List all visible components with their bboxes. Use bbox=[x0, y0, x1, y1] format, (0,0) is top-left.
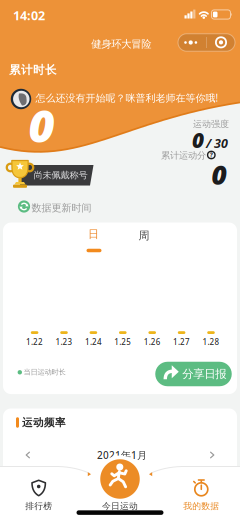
staticText: 累计时长 bbox=[9, 63, 57, 77]
button[interactable]: 排行榜 bbox=[7, 468, 71, 520]
staticText: 分享日报 bbox=[182, 367, 226, 381]
staticText: 1.24 bbox=[85, 336, 102, 347]
staticText: 今日运动 bbox=[102, 500, 138, 512]
staticText: 运动频率 bbox=[22, 416, 66, 429]
staticText: / 30 bbox=[206, 135, 228, 152]
button[interactable]: 今日运动 bbox=[85, 460, 155, 520]
staticText: 数据更新时间 bbox=[32, 201, 92, 214]
button[interactable]: 周 bbox=[0, 0, 240, 520]
staticText: 2021年1月 bbox=[97, 448, 147, 462]
staticText: 1.28 bbox=[202, 336, 219, 347]
staticText: 累计运动分 bbox=[161, 150, 206, 161]
staticText: 14:02 bbox=[13, 7, 45, 24]
button[interactable]: 我的数据 bbox=[169, 468, 233, 520]
staticText: 1.26 bbox=[144, 336, 161, 347]
staticText: 健身环大冒险 bbox=[91, 37, 151, 50]
staticText: 0 bbox=[192, 126, 204, 154]
staticText: 1.23 bbox=[55, 336, 72, 347]
button[interactable]: 更多 bbox=[0, 0, 240, 520]
staticText: 排行榜 bbox=[25, 500, 52, 512]
staticText: 日 bbox=[88, 227, 99, 241]
button[interactable]: 关闭 bbox=[0, 0, 240, 520]
staticText: 运动强度 bbox=[193, 118, 229, 130]
button[interactable]: 说明 bbox=[0, 0, 240, 520]
staticText: 1.22 bbox=[26, 336, 43, 347]
staticText: 1.25 bbox=[114, 336, 131, 347]
staticText: 0 bbox=[211, 157, 226, 193]
staticText: 当日运动时长 bbox=[24, 367, 66, 377]
staticText: 周 bbox=[138, 229, 149, 242]
staticText: 1.27 bbox=[173, 336, 190, 347]
staticText: 尚未佩戴称号 bbox=[33, 169, 87, 181]
button[interactable]: 分享日报 bbox=[155, 362, 232, 386]
button[interactable]: 上个月 bbox=[19, 446, 37, 464]
staticText: 0 bbox=[28, 94, 54, 156]
staticText: ? bbox=[210, 151, 213, 159]
button[interactable]: 下个月 bbox=[203, 446, 221, 464]
staticText: 我的数据 bbox=[183, 500, 219, 512]
button[interactable]: 日 bbox=[0, 0, 240, 520]
staticText: 怎么还没有开始呢？咪普利老师在等你哦! bbox=[36, 91, 219, 105]
button[interactable]: 刷新数据 bbox=[10, 196, 106, 218]
